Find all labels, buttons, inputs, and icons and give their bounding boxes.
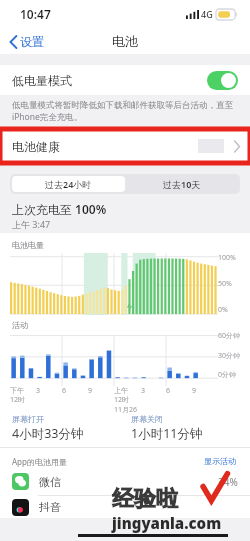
button[interactable]: 微信 xyxy=(0,468,250,495)
staticText: 50% xyxy=(218,279,232,289)
other: Battery Health xyxy=(234,141,240,152)
staticText: 屏幕打开 xyxy=(12,414,44,424)
staticText: 0分钟 xyxy=(218,370,237,380)
staticText: 显示活动 xyxy=(204,456,236,466)
staticText: 9 xyxy=(88,386,93,396)
staticText: 100% xyxy=(218,253,236,263)
staticText: 上午 xyxy=(114,386,128,395)
button[interactable]: 电池健康 xyxy=(0,129,250,163)
staticText: 30分钟 xyxy=(218,351,241,361)
staticText: 0% xyxy=(218,305,228,315)
staticText: 1小时11分钟 xyxy=(131,425,203,442)
button[interactable]: 设置 xyxy=(0,30,52,53)
staticText: 9 xyxy=(192,386,197,396)
staticText: 过去10天 xyxy=(163,178,201,190)
staticText: 6 xyxy=(166,386,171,396)
staticText: 4小时33分钟 xyxy=(12,425,84,442)
staticText: 微信 xyxy=(39,475,61,489)
staticText: 屏幕关闭 xyxy=(131,414,163,424)
staticText: 下午 xyxy=(10,386,24,395)
staticText: jingyanla.com xyxy=(112,513,222,533)
staticText: 4G xyxy=(201,8,213,20)
staticText: 设置 xyxy=(20,34,44,49)
staticText: iPhone完全充电。 xyxy=(12,111,83,123)
staticText: 11月26日 xyxy=(114,405,141,414)
staticText: 电池电量 xyxy=(12,240,44,250)
staticText: 低电量模式将暂时降低如下载和邮件获取等后台活动，直至 xyxy=(12,100,233,111)
staticText: 上次充电至 100% xyxy=(12,201,107,217)
staticText: 6 xyxy=(62,386,67,396)
staticText: 活动 xyxy=(12,320,28,330)
staticText: 3 xyxy=(36,386,41,396)
button[interactable]: 抖音 xyxy=(0,496,250,518)
staticText: 抖音 xyxy=(39,500,61,514)
staticText: 电池健康 xyxy=(12,139,60,154)
staticText: 过去24小时 xyxy=(45,178,92,190)
button[interactable]: 低电量模式 xyxy=(0,65,250,95)
button[interactable]: 过去24小时 xyxy=(12,176,125,192)
staticText: 12时 xyxy=(10,395,26,405)
staticText: 上午 3:47 xyxy=(12,218,51,230)
button[interactable]: 显示活动 xyxy=(202,454,238,468)
staticText: 34% xyxy=(218,475,238,489)
staticText: 10:47 xyxy=(20,6,51,22)
staticText: 低电量模式 xyxy=(12,73,72,88)
staticText: 经验啦 xyxy=(112,485,178,513)
button[interactable]: 过去10天 xyxy=(125,176,238,192)
staticText: 60分钟 xyxy=(218,331,241,341)
staticText: 电池 xyxy=(112,33,138,49)
staticText: 3 xyxy=(141,386,146,396)
staticText: 12时 xyxy=(114,395,130,405)
staticText: App的电池用量 xyxy=(12,456,67,467)
